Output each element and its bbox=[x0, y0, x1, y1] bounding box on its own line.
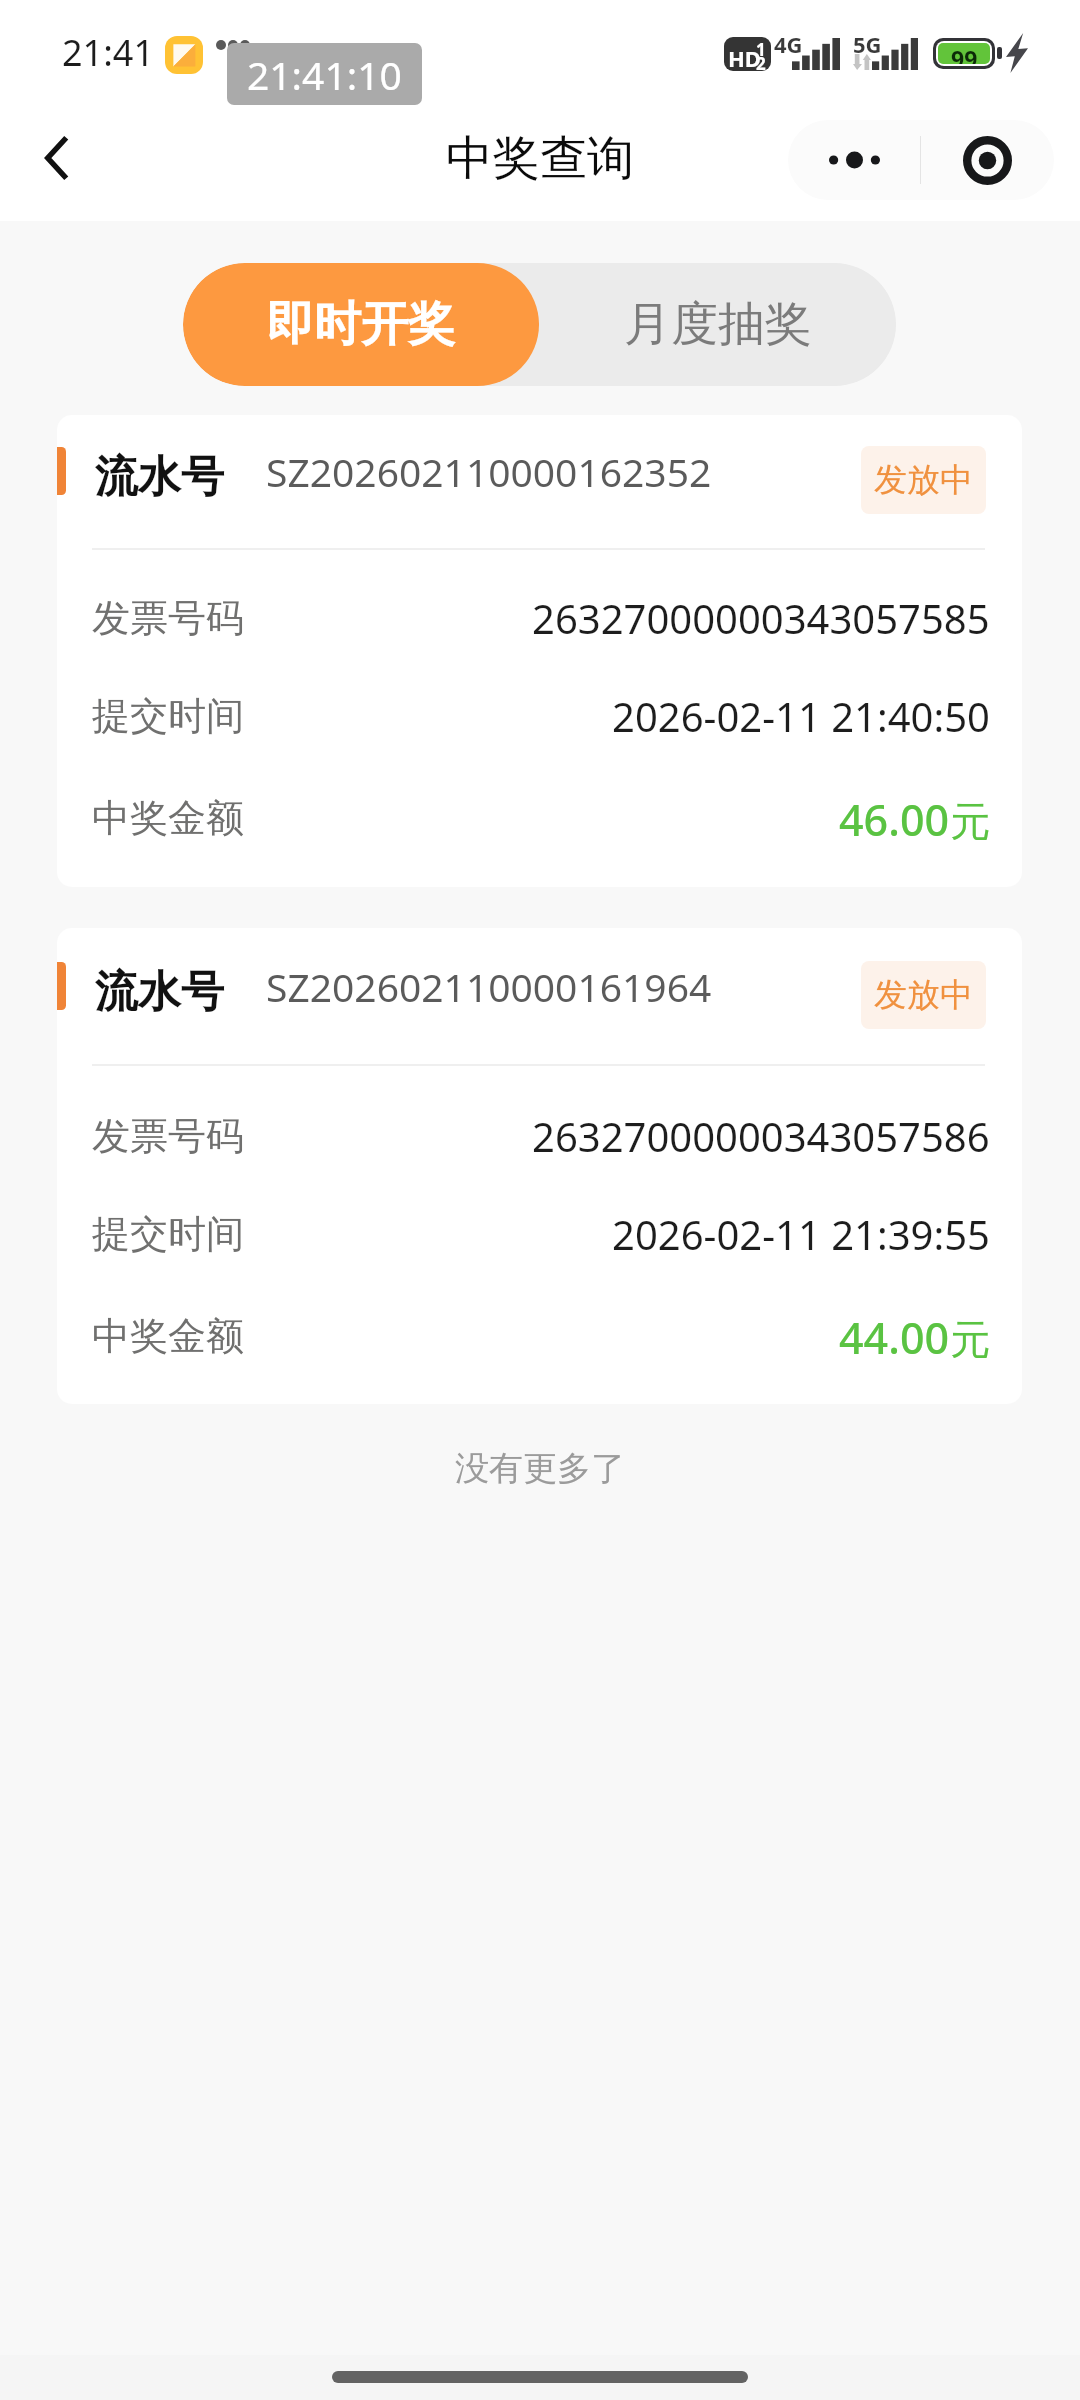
staticText: 44.00 bbox=[839, 1308, 950, 1364]
staticText: 2 bbox=[756, 52, 766, 71]
button[interactable]: Back bbox=[12, 113, 102, 203]
staticText: 2026-02-11 21:39:55 bbox=[612, 1207, 990, 1261]
staticText: 元 bbox=[950, 796, 990, 846]
staticText: SZ202602110000162352 bbox=[266, 445, 712, 498]
staticText: 中奖查询 bbox=[0, 129, 1080, 188]
staticText: 流水号 bbox=[95, 450, 224, 504]
staticText: 21:41 bbox=[62, 28, 155, 77]
staticText: 26327000000343057585 bbox=[532, 591, 990, 645]
button[interactable]: More bbox=[788, 120, 920, 200]
staticText: 发票号码 bbox=[92, 594, 244, 642]
staticText: 26327000000343057586 bbox=[532, 1109, 990, 1163]
button[interactable]: Close mini program bbox=[921, 120, 1054, 200]
staticText: 没有更多了 bbox=[455, 1447, 625, 1490]
staticText: 发放中 bbox=[874, 459, 973, 501]
staticText: 中奖金额 bbox=[92, 794, 244, 842]
staticText: 5G bbox=[853, 29, 882, 59]
staticText: 21:41:10 bbox=[247, 48, 402, 101]
staticText: 即时开奖 bbox=[267, 295, 455, 354]
staticText: 提交时间 bbox=[92, 1210, 244, 1258]
button[interactable]: 即时开奖 bbox=[183, 263, 539, 386]
staticText: 月度抽奖 bbox=[624, 295, 812, 354]
staticText: 提交时间 bbox=[92, 692, 244, 740]
staticText: 99 bbox=[951, 43, 978, 64]
staticText: 2026-02-11 21:40:50 bbox=[612, 689, 990, 743]
staticText: 流水号 bbox=[95, 965, 224, 1019]
staticText: 元 bbox=[950, 1314, 990, 1364]
staticText: 4G bbox=[774, 29, 803, 59]
button[interactable]: 流水号 bbox=[57, 415, 1022, 887]
staticText: 46.00 bbox=[839, 790, 950, 846]
staticText: 发放中 bbox=[874, 974, 973, 1016]
staticText: 发票号码 bbox=[92, 1112, 244, 1160]
staticText: HD bbox=[728, 43, 761, 71]
button[interactable]: 流水号 bbox=[57, 928, 1022, 1404]
staticText: 1 bbox=[756, 38, 766, 61]
staticText: 中奖金额 bbox=[92, 1312, 244, 1360]
button[interactable]: 月度抽奖 bbox=[539, 263, 896, 386]
staticText: SZ202602110000161964 bbox=[266, 960, 712, 1013]
